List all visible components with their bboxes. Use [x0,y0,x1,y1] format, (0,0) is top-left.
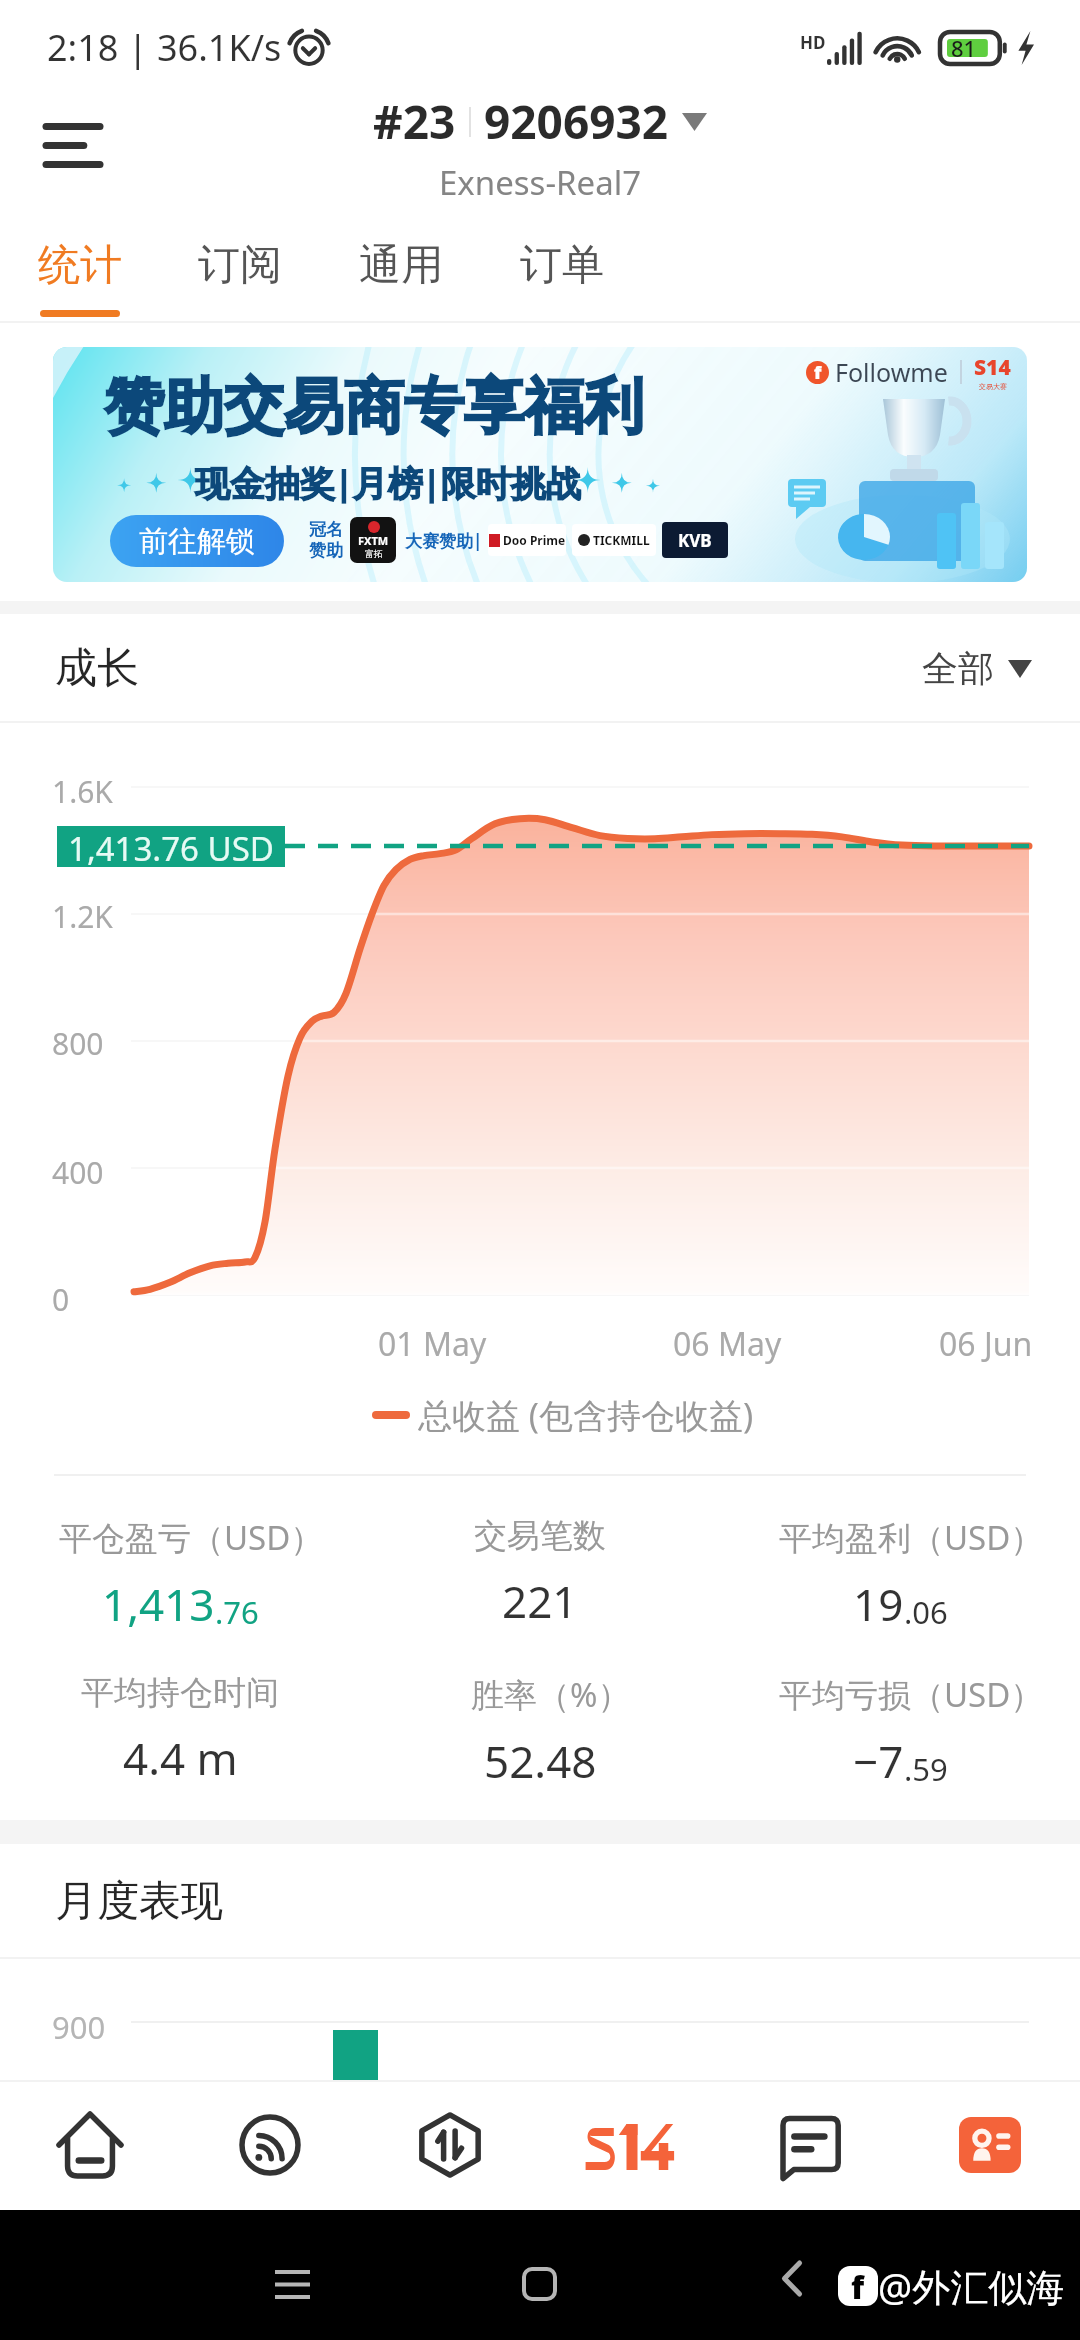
staticText: 交易大赛 [979,382,1007,391]
button[interactable]: Home [509,2250,569,2318]
staticText: HD [800,31,826,54]
staticText: 订单 [520,239,604,292]
staticText: 通用 [359,239,443,292]
button[interactable]: 赞助交易商专享福利 [53,347,1027,582]
staticText: 81 [951,33,977,63]
button[interactable]: Trade [360,2080,540,2210]
button[interactable]: Back [768,2252,816,2304]
button[interactable]: Menu [20,107,126,183]
staticText: 总收益 (包含持仓收益) [418,1392,754,1438]
staticText: 平均盈利（USD） [779,1515,1044,1560]
staticText: 冠名 [309,519,343,540]
staticText: 平均持仓时间 [81,1672,279,1714]
staticText: 大赛赞助| [405,529,483,552]
staticText: Exness-Real7 [439,160,642,205]
button[interactable]: Recents [262,2250,322,2318]
staticText: 4.4 m [123,1728,238,1788]
button[interactable]: Messages [720,2080,900,2210]
staticText: Followme [835,355,948,389]
staticText: 06 May [673,1322,782,1366]
staticText: 现金抽奖|月榜|限时挑战 [195,459,581,507]
staticText: 成长 [55,642,139,695]
staticText: S14 [974,353,1011,382]
staticText: .06 [904,1591,948,1633]
staticText: @外汇似海 [878,2260,1065,2312]
button[interactable]: Home [0,2080,180,2210]
button[interactable]: Profile [900,2080,1080,2210]
staticText: −7 [853,1731,904,1791]
staticText: TICKMILL [593,532,650,548]
staticText: 全部 [922,646,994,691]
staticText: 1.6K [52,771,113,812]
staticText: 0 [52,1279,70,1320]
staticText: Doo Prime [503,532,566,548]
staticText: 胜率（%） [471,1672,631,1717]
staticText: f [814,361,822,383]
staticText: 平仓盈亏（USD） [59,1515,324,1560]
staticText: KVB [678,529,712,552]
staticText: 1.2K [52,896,113,937]
staticText: 富拓 [365,548,383,559]
staticText: 月度表现 [55,1875,223,1928]
staticText: 19 [853,1574,904,1634]
staticText: 52.48 [484,1731,597,1791]
button[interactable]: S14 contest [540,2080,720,2210]
button[interactable]: 订单 [481,225,642,323]
button[interactable]: 订阅 [159,225,320,323]
staticText: f [851,2266,865,2305]
staticText: #23 [373,90,456,153]
staticText: 交易笔数 [474,1515,606,1557]
staticText: 06 Jun [939,1322,1033,1366]
staticText: FXTM [358,533,389,548]
button[interactable]: #23 [365,90,715,205]
staticText: 平均亏损（USD） [779,1672,1044,1717]
staticText: 统计 [38,239,122,292]
staticText: .59 [904,1748,948,1790]
staticText: 赞助交易商专享福利 [104,369,644,445]
staticText: 01 May [378,1322,487,1366]
staticText: 9206932 [484,90,669,153]
staticText: 221 [502,1571,578,1631]
button[interactable]: Discover [180,2080,360,2210]
button[interactable]: 统计 [0,225,159,323]
staticText: 1,413.76 USD [68,826,274,867]
button[interactable]: 通用 [320,225,481,323]
staticText: 赞助 [309,540,343,561]
staticText: 400 [52,1152,104,1193]
staticText: 前往解锁 [139,523,255,560]
staticText: 900 [52,2006,106,2048]
button[interactable]: 前往解锁 [110,515,284,567]
staticText: 订阅 [198,239,282,292]
staticText: 800 [52,1023,104,1064]
button[interactable]: 全部 [922,646,1032,691]
staticText: 1,413 [102,1574,215,1634]
staticText: .76 [215,1591,259,1633]
staticText: 2:18 | 36.1K/s [47,23,282,72]
